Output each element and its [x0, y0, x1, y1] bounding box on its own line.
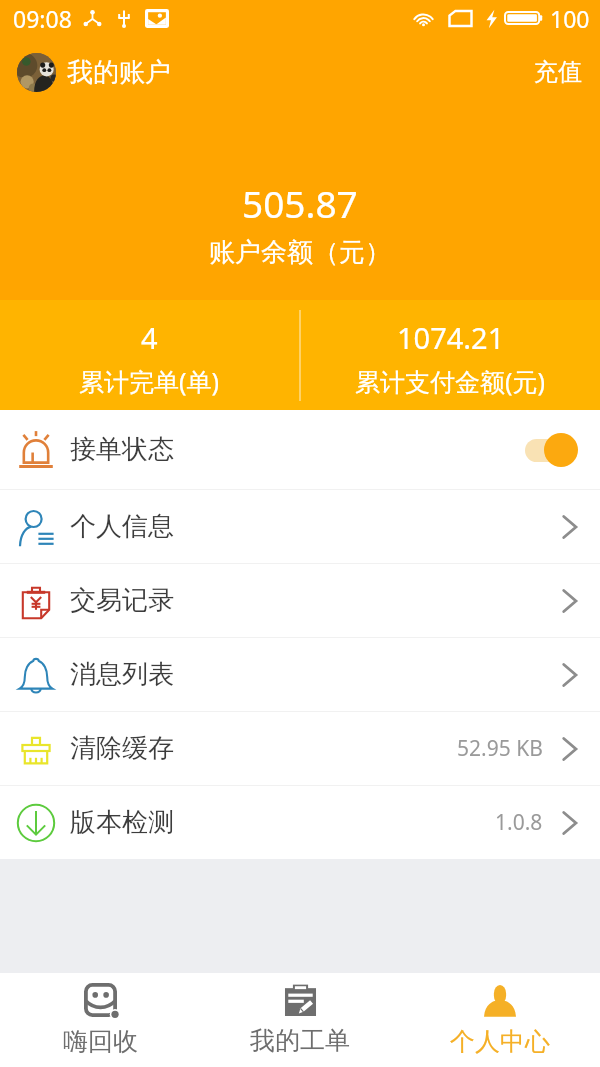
staticText: 我的工单	[250, 1025, 350, 1056]
button[interactable]: 1074.21	[301, 300, 600, 410]
staticText: 嗨回收	[63, 1026, 138, 1057]
button[interactable]: 接单状态	[0, 410, 600, 489]
staticText: 充值	[534, 57, 582, 87]
staticText: 09:08	[13, 3, 72, 34]
staticText: 52.95 KB	[457, 734, 543, 763]
other: Account avatar	[17, 53, 56, 92]
button[interactable]: 消息列表	[0, 638, 600, 711]
staticText: 账户余额（元）	[209, 236, 391, 269]
button[interactable]: 交易记录	[0, 564, 600, 637]
staticText: 接单状态	[70, 433, 174, 466]
staticText: 交易记录	[70, 584, 174, 617]
staticText: 版本检测	[70, 806, 174, 839]
staticText: 505.87	[242, 178, 358, 228]
button[interactable]: 我的工单	[200, 973, 400, 1067]
button[interactable]: 充值	[516, 36, 600, 108]
staticText: 4	[141, 318, 158, 357]
staticText: 1.0.8	[495, 808, 543, 837]
staticText: 个人信息	[70, 510, 174, 543]
staticText: 100	[550, 3, 590, 34]
staticText: 清除缓存	[70, 732, 174, 765]
button[interactable]: 版本检测	[0, 786, 600, 859]
button[interactable]: 清除缓存	[0, 712, 600, 785]
staticText: 消息列表	[70, 658, 174, 691]
button[interactable]: 4	[0, 300, 299, 410]
staticText: 个人中心	[450, 1026, 550, 1057]
button[interactable]: 个人中心	[400, 973, 600, 1067]
button[interactable]: 个人信息	[0, 490, 600, 563]
button[interactable]: 嗨回收	[0, 973, 200, 1067]
button[interactable]: Account avatar	[17, 36, 171, 108]
staticText: 累计完单(单)	[79, 364, 220, 398]
button[interactable]: Order status toggle	[525, 432, 578, 468]
staticText: 1074.21	[397, 318, 505, 357]
staticText: 我的账户	[67, 56, 171, 89]
staticText: 累计支付金额(元)	[355, 364, 546, 398]
